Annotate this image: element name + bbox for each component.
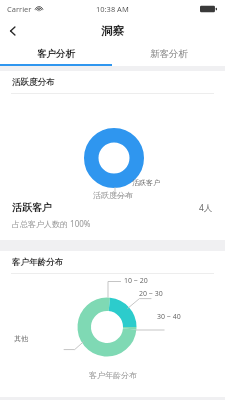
button[interactable]: 活跃度分布 (0, 71, 225, 240)
staticText: 客户分析 (37, 48, 75, 60)
staticText: 活跃度分布 (12, 77, 55, 88)
staticText: 活跃度分布 (93, 190, 133, 200)
staticText: 其他 (14, 334, 28, 343)
button[interactable]: Back (0, 18, 26, 44)
staticText: 10:38 AM (96, 4, 129, 14)
staticText: 客户年龄分布 (12, 257, 63, 268)
staticText: 占总客户人数的 100% (12, 218, 91, 229)
staticText: Carrier (7, 4, 32, 14)
staticText: 30 ~ 40 (157, 312, 181, 322)
staticText: 客户年龄分布 (89, 370, 137, 380)
button[interactable]: 客户分析 (0, 44, 112, 64)
button[interactable]: 客户年龄分布 (0, 251, 225, 397)
staticText: 20 ~ 30 (139, 289, 163, 299)
staticText: 4人 (199, 202, 213, 214)
staticText: 活跃客户 (12, 201, 52, 214)
button[interactable]: 新客分析 (112, 44, 225, 64)
staticText: 10 ~ 20 (124, 276, 148, 286)
staticText: 新客分析 (150, 48, 188, 60)
staticText: 洞察 (101, 24, 124, 38)
staticText: 活跃客户 (132, 178, 160, 187)
